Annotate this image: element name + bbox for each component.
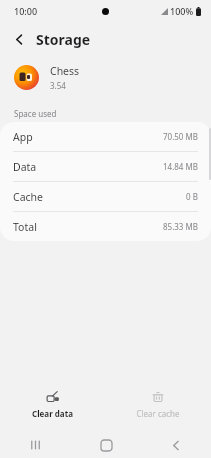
button[interactable]: App — [0, 122, 211, 151]
staticText: Storage — [36, 30, 91, 49]
staticText: Space used — [14, 108, 57, 119]
staticText: 100% — [170, 5, 194, 17]
staticText: Cache — [13, 190, 43, 204]
button[interactable]: Home — [71, 432, 141, 458]
staticText: Data — [13, 160, 37, 174]
button[interactable]: Cache — [0, 182, 211, 211]
staticText: Clear cache — [136, 408, 180, 419]
staticText: 10:00 — [14, 5, 38, 17]
staticText: 70.50 MB — [163, 131, 198, 142]
staticText: Clear data — [32, 408, 73, 419]
staticText: 14.84 MB — [163, 161, 198, 172]
staticText: 3.54 — [50, 80, 66, 91]
staticText: Total — [13, 220, 37, 234]
staticText: 85.33 MB — [163, 221, 198, 232]
button[interactable]: Back — [141, 432, 211, 458]
button[interactable]: Total — [0, 212, 211, 241]
button[interactable]: Back — [6, 26, 32, 52]
button[interactable]: Clear data — [0, 390, 105, 419]
staticText: Chess — [50, 64, 80, 78]
staticText: App — [13, 130, 33, 144]
button[interactable]: Data — [0, 152, 211, 181]
staticText: 0 B — [186, 191, 198, 202]
button[interactable]: Clear cache — [105, 390, 211, 419]
button[interactable]: Recent apps — [0, 432, 71, 458]
